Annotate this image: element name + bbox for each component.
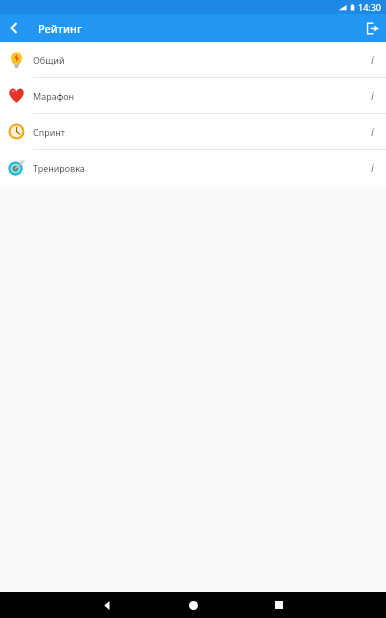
button[interactable]: Log out — [358, 14, 386, 42]
button[interactable]: Recent apps — [257, 592, 301, 618]
button[interactable]: Home — [171, 592, 215, 618]
staticText: i — [371, 52, 374, 67]
button[interactable]: Back — [85, 592, 129, 618]
button[interactable]: Info about Тренировка — [358, 150, 386, 185]
staticText: 14:30 — [358, 1, 382, 13]
button[interactable]: Тренировка — [0, 150, 386, 185]
staticText: i — [371, 88, 374, 103]
button[interactable]: Info about Марафон — [358, 78, 386, 113]
staticText: i — [371, 160, 374, 175]
button[interactable]: Марафон — [0, 78, 386, 113]
staticText: Марафон — [33, 90, 358, 102]
button[interactable]: Info about Общий — [358, 42, 386, 77]
staticText: Спринт — [33, 126, 358, 138]
button[interactable]: Общий — [0, 42, 386, 77]
button[interactable]: Спринт — [0, 114, 386, 149]
button[interactable]: Info about Спринт — [358, 114, 386, 149]
staticText: Тренировка — [33, 162, 358, 174]
staticText: i — [371, 124, 374, 139]
button[interactable]: Back — [0, 14, 28, 42]
staticText: Рейтинг — [38, 21, 82, 36]
staticText: Общий — [33, 54, 358, 66]
